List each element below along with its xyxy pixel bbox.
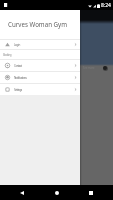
button[interactable]: Back: [10, 185, 34, 200]
staticText: Notifications: [14, 76, 27, 80]
staticText: Log in: [14, 43, 20, 47]
button[interactable]: Contact: [0, 60, 80, 71]
staticText: Contact: [14, 64, 22, 68]
button[interactable]: Settings: [0, 84, 80, 95]
staticText: Booking: [3, 53, 12, 57]
staticText: See more: [83, 66, 95, 70]
staticText: Curves Woman Gym: [8, 20, 68, 28]
button[interactable]: Notifications: [0, 72, 80, 83]
button[interactable]: Home: [45, 185, 69, 200]
staticText: 8:24: [101, 2, 111, 9]
button[interactable]: Log in: [0, 40, 80, 49]
button[interactable]: More options: [103, 66, 107, 70]
staticText: Settings: [14, 88, 22, 92]
button[interactable]: Recent apps: [79, 185, 103, 200]
